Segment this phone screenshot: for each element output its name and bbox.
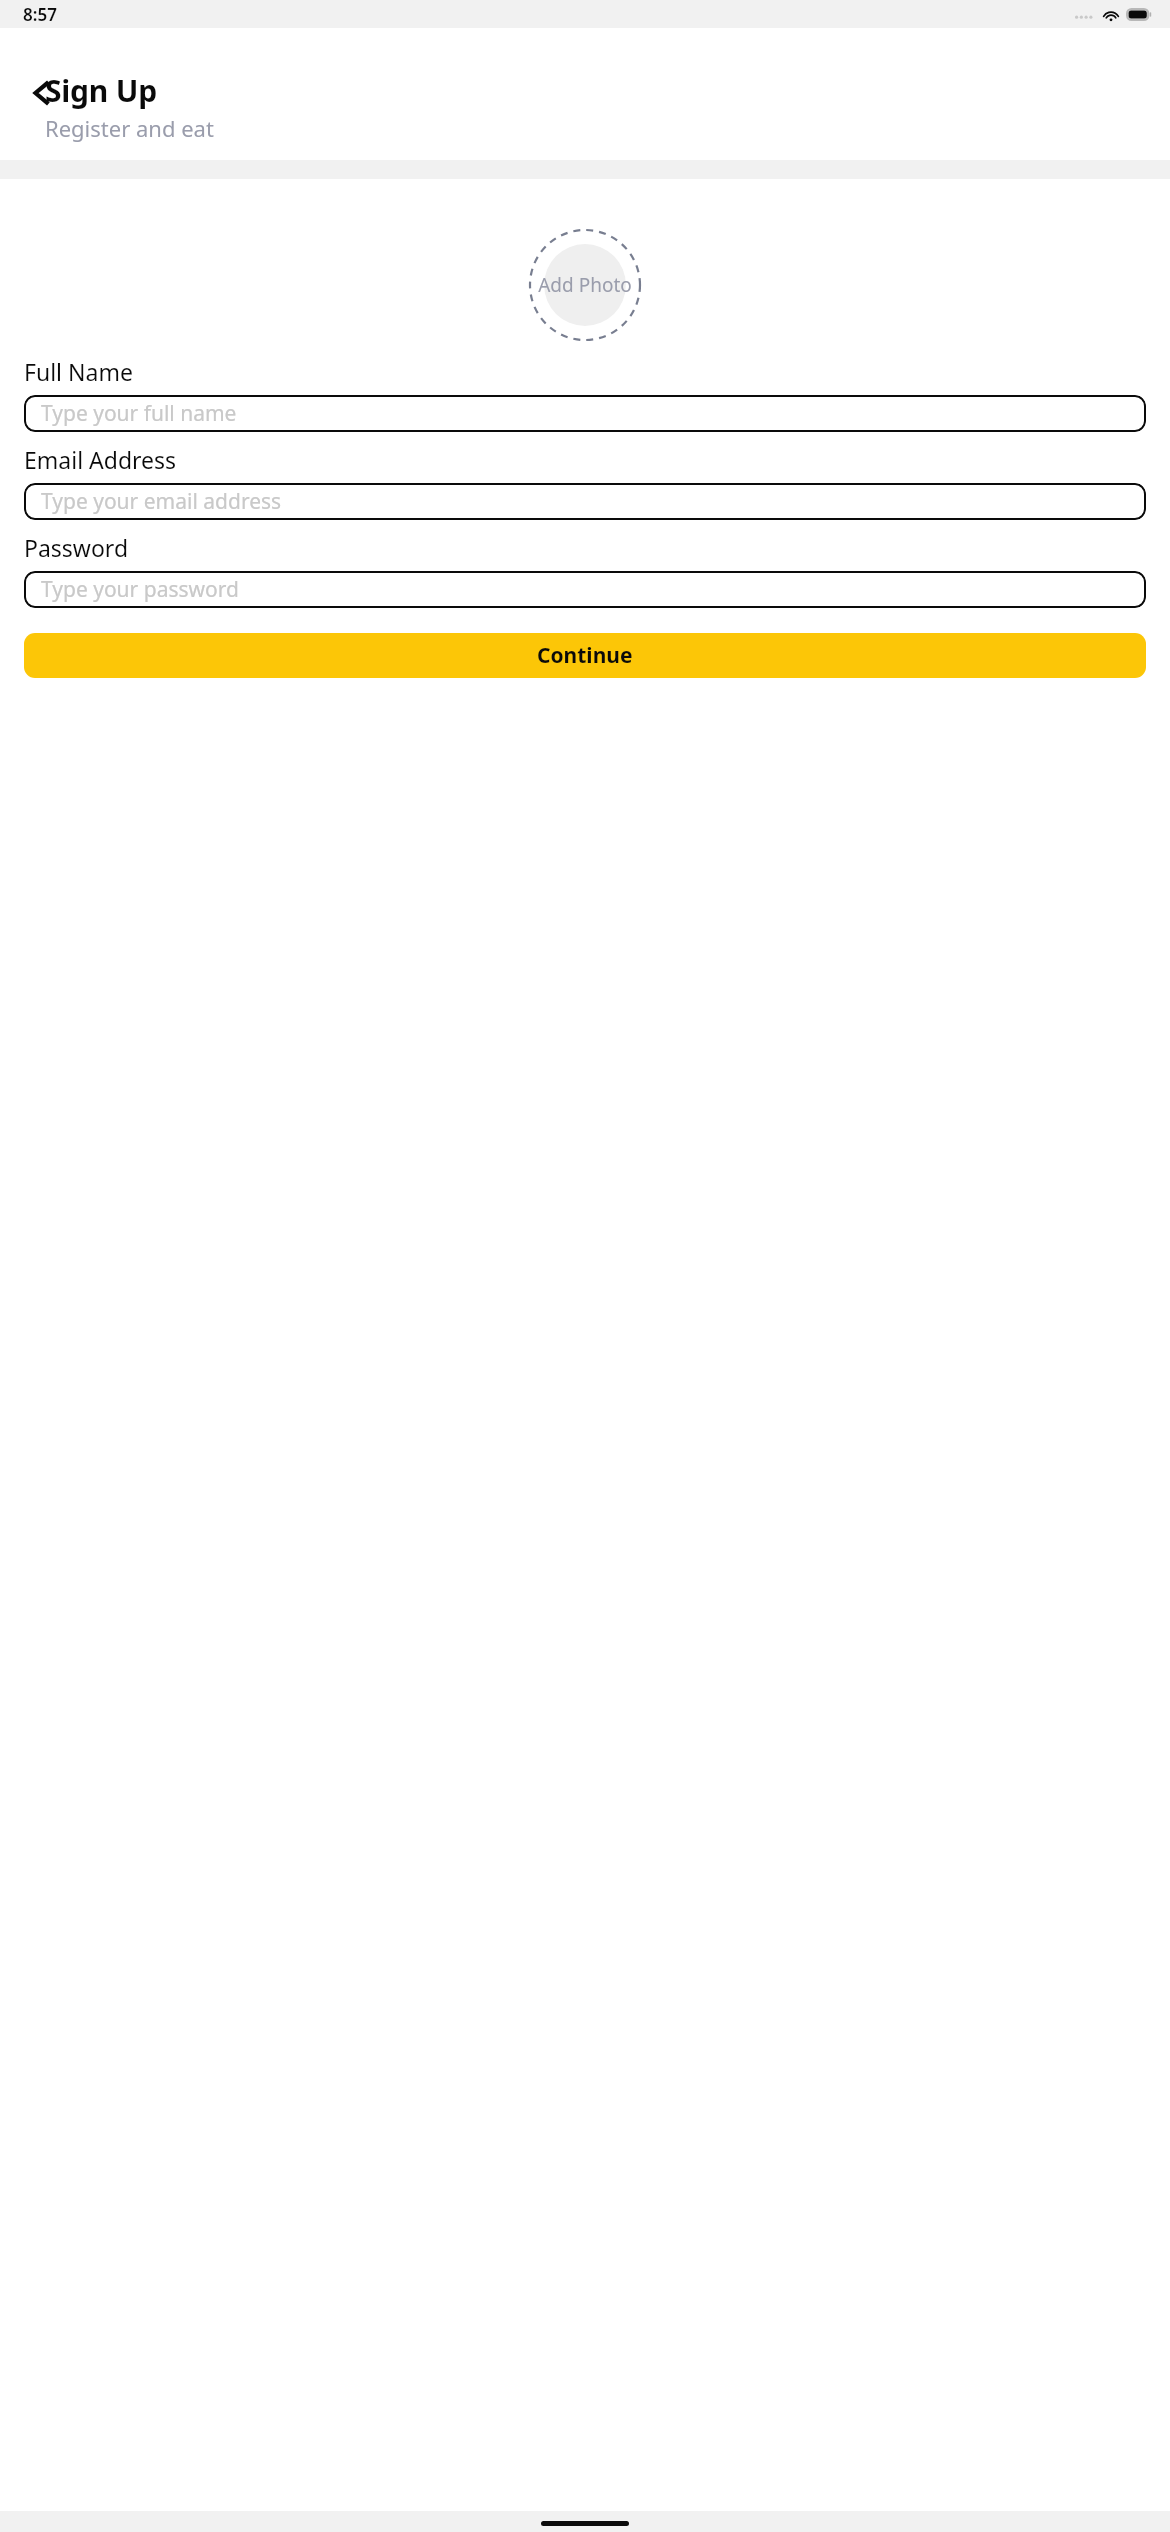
staticText: Continue [537, 641, 633, 670]
button[interactable]: Type your full name [24, 395, 1146, 432]
button[interactable]: Add Photo [529, 229, 641, 341]
staticText: Type your password [41, 575, 239, 604]
staticText: Register and eat [45, 113, 214, 143]
button[interactable]: Type your password [24, 571, 1146, 608]
staticText: Email Address [24, 444, 177, 475]
staticText: Full Name [24, 356, 133, 387]
staticText: Password [24, 532, 129, 563]
staticText: Type your email address [41, 487, 282, 516]
button[interactable]: Type your email address [24, 483, 1146, 520]
button[interactable]: Continue [24, 633, 1146, 678]
staticText: Type your full name [41, 399, 237, 428]
staticText: Add Photo [538, 272, 632, 298]
staticText: 8:57 [23, 3, 57, 26]
staticText: Sign Up [45, 70, 157, 111]
button[interactable]: Back [14, 67, 66, 119]
